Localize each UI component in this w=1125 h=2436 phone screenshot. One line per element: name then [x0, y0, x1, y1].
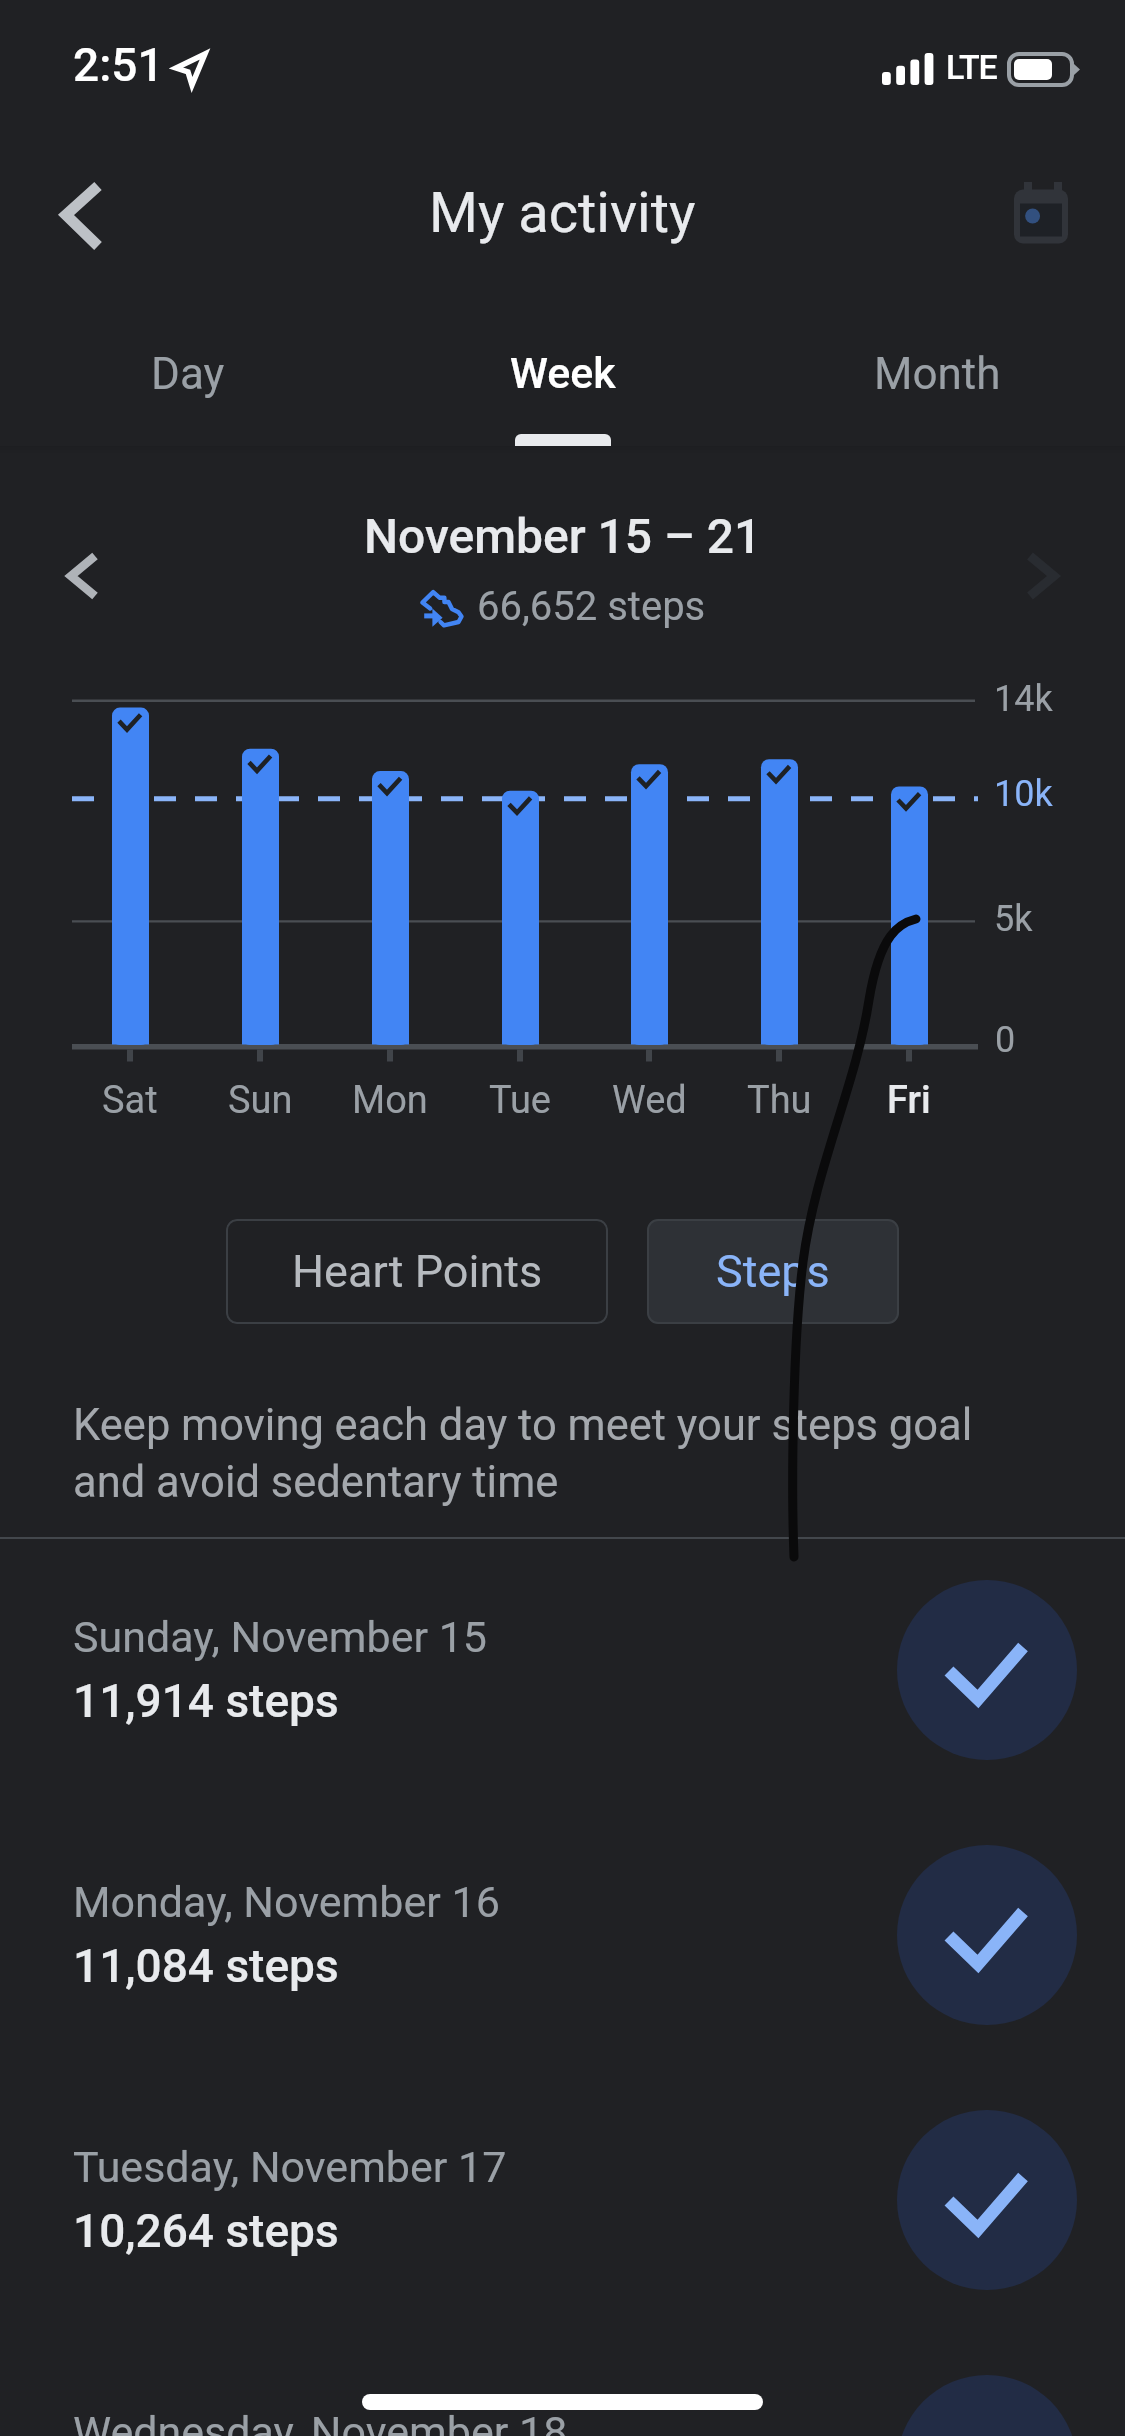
button[interactable]: Day	[0, 330, 375, 446]
button[interactable]: Next week	[990, 532, 1080, 622]
staticText: Thu	[747, 1078, 812, 1123]
staticText: 2:51	[73, 38, 164, 92]
button[interactable]: Monday, November 16	[0, 1803, 1125, 2068]
staticText: Wed	[612, 1078, 687, 1123]
button[interactable]: Week	[375, 330, 750, 446]
button[interactable]: Sunday, November 15	[0, 1538, 1125, 1803]
staticText: LTE	[946, 47, 997, 87]
staticText: 14k	[994, 678, 1053, 720]
staticText: 11,914 steps	[73, 1674, 339, 1728]
staticText: Week	[510, 348, 616, 398]
button[interactable]: Tuesday, November 17	[0, 2068, 1125, 2333]
staticText: 5k	[994, 898, 1033, 940]
staticText: Mon	[352, 1078, 428, 1123]
button[interactable]: Heart Points	[226, 1219, 608, 1324]
staticText: 0	[995, 1019, 1016, 1061]
staticText: Sun	[228, 1078, 293, 1123]
button[interactable]: Back	[30, 155, 140, 275]
staticText: 10,264 steps	[73, 2204, 339, 2258]
staticText: Tuesday, November 17	[73, 2142, 507, 2192]
staticText: 10k	[994, 773, 1053, 815]
staticText: Fri	[887, 1078, 931, 1123]
staticText: Heart Points	[292, 1245, 543, 1298]
staticText: Tue	[489, 1078, 552, 1123]
staticText: 11,084 steps	[73, 1939, 339, 1993]
button[interactable]: Steps	[647, 1219, 899, 1324]
staticText: Day	[151, 348, 225, 400]
staticText: Month	[874, 348, 1001, 400]
staticText: Monday, November 16	[73, 1877, 500, 1927]
button[interactable]: Month	[750, 330, 1125, 446]
button[interactable]: Calendar	[1002, 165, 1107, 270]
staticText: Steps	[716, 1245, 830, 1298]
staticText: Sat	[102, 1078, 158, 1123]
staticText: My activity	[429, 180, 696, 246]
staticText: Wednesday, November 18	[73, 2407, 568, 2436]
staticText: November 15 – 21	[364, 508, 762, 564]
button[interactable]: Wednesday, November 18	[0, 2333, 1125, 2436]
staticText: Sunday, November 15	[73, 1612, 488, 1662]
staticText: Keep moving each day to meet your steps …	[73, 1400, 1033, 1508]
button[interactable]: Previous week	[40, 532, 130, 622]
staticText: 66,652 steps	[477, 583, 706, 630]
